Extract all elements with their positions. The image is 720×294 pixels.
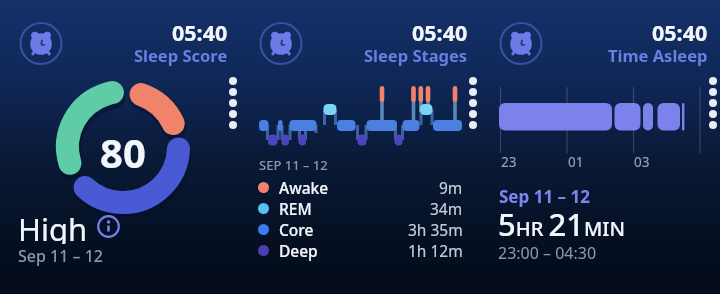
staticText: 03 (634, 153, 650, 171)
button[interactable]: 05:40 (480, 0, 720, 294)
staticText: Deep (279, 240, 318, 261)
staticText: High (18, 208, 88, 244)
staticText: 1h 12m (408, 240, 463, 261)
staticText: 23:00 – 04:30 (498, 242, 597, 264)
staticText: 23 (501, 153, 517, 171)
staticText: 5HR 21MIN (498, 203, 625, 245)
staticText: Sleep Score (134, 44, 228, 66)
staticText: REM (279, 198, 312, 219)
button[interactable]: REM (258, 198, 463, 219)
button[interactable]: Core (258, 219, 463, 240)
staticText: Sleep Stages (364, 44, 468, 66)
button[interactable]: High (18, 208, 120, 244)
staticText: Sep 11 – 12 (18, 245, 103, 267)
staticText: 05:40 (412, 18, 468, 47)
staticText: SEP 11 – 12 (259, 156, 328, 174)
staticText: 3h 35m (408, 219, 463, 240)
staticText: 34m (430, 198, 463, 219)
staticText: 9m (439, 177, 463, 198)
staticText: 01 (568, 153, 584, 171)
staticText: 05:40 (172, 18, 228, 47)
button[interactable]: 05:40 (0, 0, 240, 294)
staticText: 05:40 (652, 18, 708, 47)
staticText: Awake (279, 177, 329, 198)
button[interactable]: 05:40 (240, 0, 480, 294)
staticText: 80 (100, 125, 146, 169)
staticText: Time Asleep (608, 44, 708, 66)
staticText: Core (279, 219, 314, 240)
staticText: Sep 11 – 12 (499, 185, 590, 208)
button[interactable]: Deep (258, 240, 463, 261)
button[interactable]: Awake (258, 177, 463, 198)
